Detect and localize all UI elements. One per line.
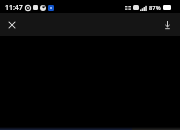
button[interactable]: Download [159, 16, 176, 33]
staticText: 11:47 [5, 3, 23, 12]
staticText: 87% [149, 4, 161, 12]
button[interactable]: Close [3, 16, 20, 33]
